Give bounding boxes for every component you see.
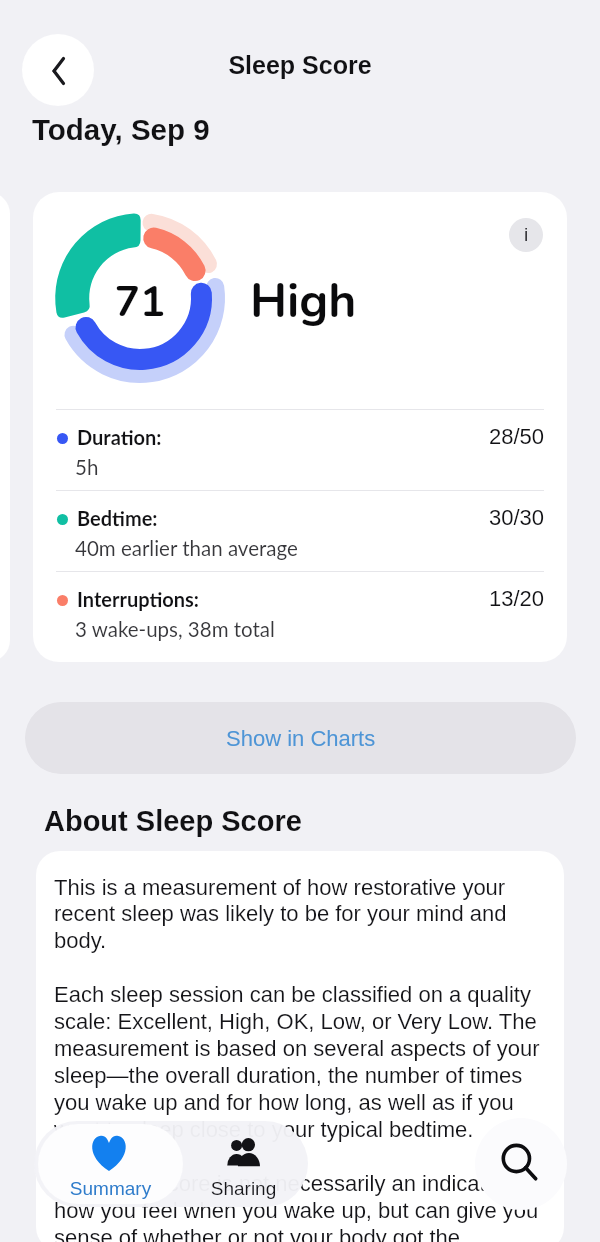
staticText: 5h [75,455,99,480]
button[interactable]: Sharing [183,1124,304,1204]
button[interactable] [38,1124,183,1204]
staticText: 13/20 [56,586,544,611]
staticText: Show in Charts [226,726,376,751]
staticText: Today, Sep 9 [32,113,210,146]
button[interactable]: Info [509,218,543,252]
staticText: Interruptions: [77,587,199,611]
staticText: Bedtime: [77,506,158,530]
staticText: Sleep Score [0,51,600,79]
staticText: This is a measurement of how restorative… [54,875,550,1242]
button[interactable]: Show in Charts [25,702,576,774]
staticText: 28/50 [56,424,544,449]
button[interactable]: Search [475,1118,567,1210]
staticText: High [250,268,357,333]
staticText: 30/30 [56,505,544,530]
staticText: i [524,224,529,245]
staticText: Summary [38,1178,183,1199]
staticText: Sharing [183,1178,304,1199]
staticText: 40m earlier than average [75,536,298,561]
staticText: Duration: [77,425,162,449]
button[interactable]: Summary [38,1124,183,1204]
staticText: About Sleep Score [44,805,302,837]
staticText: 71 [50,274,230,331]
button[interactable]: Back [22,34,94,106]
staticText: 3 wake-ups, 38m total [75,617,275,642]
